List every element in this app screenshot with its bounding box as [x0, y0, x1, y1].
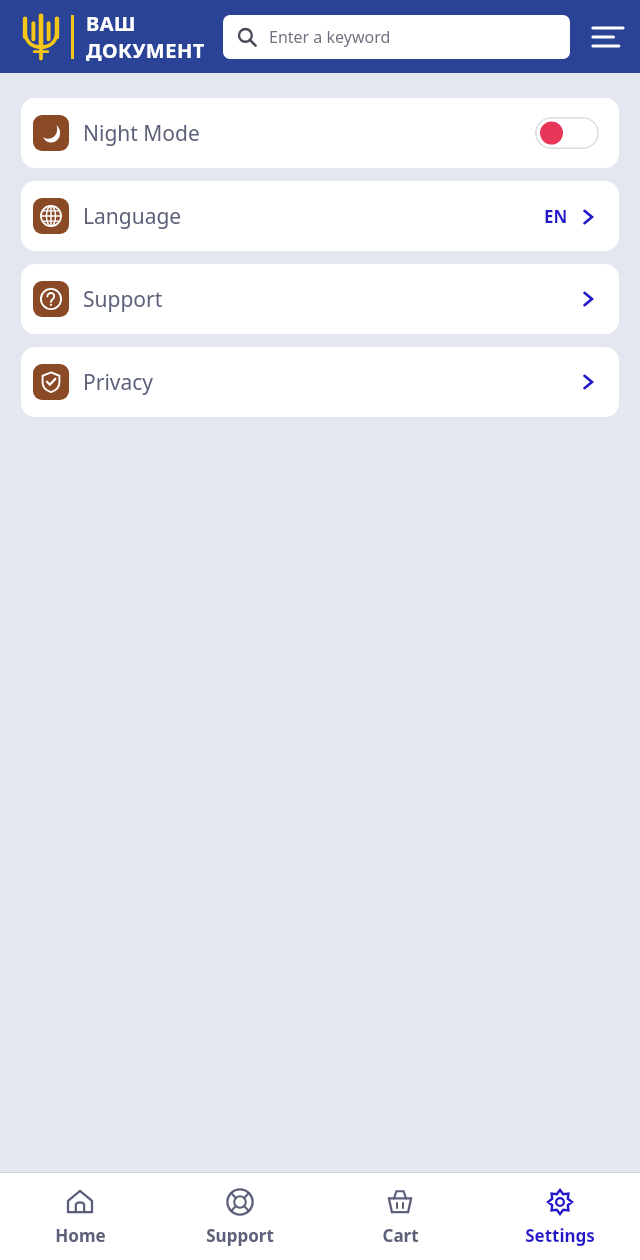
- button[interactable]: Support: [160, 1173, 320, 1260]
- staticText: Support: [206, 1224, 274, 1247]
- staticText: Settings: [525, 1224, 595, 1247]
- staticText: EN: [544, 205, 568, 228]
- button[interactable]: Menu: [586, 15, 630, 59]
- staticText: Home: [55, 1224, 106, 1247]
- button[interactable]: Night Mode toggle: [535, 117, 599, 149]
- staticText: Cart: [382, 1224, 419, 1247]
- staticText: Night Mode: [83, 119, 200, 148]
- staticText: ДОКУМЕНТ: [86, 37, 205, 64]
- staticText: ВАШ: [86, 10, 136, 37]
- button[interactable]: Settings: [480, 1173, 640, 1260]
- staticText: Privacy: [83, 368, 154, 397]
- button[interactable]: Cart: [320, 1173, 480, 1260]
- button[interactable]: Night Mode: [21, 98, 619, 168]
- button[interactable]: Language: [21, 181, 619, 251]
- staticText: Enter a keyword: [269, 26, 391, 48]
- button[interactable]: Privacy: [21, 347, 619, 417]
- staticText: Support: [83, 285, 163, 314]
- staticText: Language: [83, 202, 182, 231]
- button[interactable]: Support: [21, 264, 619, 334]
- button[interactable]: Home: [0, 1173, 160, 1260]
- button[interactable]: Enter a keyword: [223, 15, 570, 59]
